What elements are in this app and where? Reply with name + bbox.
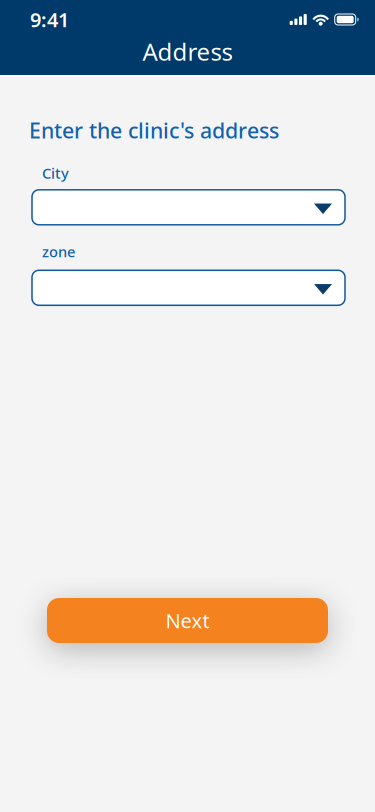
button[interactable]: Select zone bbox=[32, 270, 345, 305]
button[interactable]: Select City bbox=[32, 190, 345, 225]
staticText: City bbox=[42, 163, 69, 183]
staticText: Enter the clinic's address bbox=[29, 116, 279, 144]
staticText: Next bbox=[165, 607, 209, 634]
staticText: 9:41 bbox=[30, 6, 69, 33]
staticText: zone bbox=[42, 242, 75, 261]
staticText: Address bbox=[142, 36, 232, 67]
button[interactable]: Next bbox=[47, 598, 328, 643]
